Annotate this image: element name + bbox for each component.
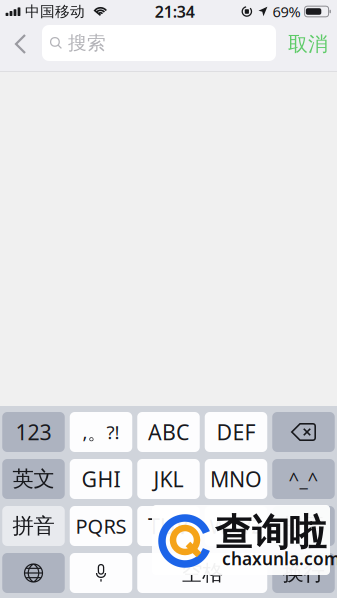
staticText: 取消 bbox=[288, 32, 328, 56]
button[interactable]: GHI bbox=[70, 459, 132, 499]
button[interactable]: Dictation bbox=[70, 553, 132, 593]
button[interactable]: JKL bbox=[137, 459, 200, 499]
staticText: 查询啦 bbox=[215, 510, 326, 556]
staticText: 换行 bbox=[282, 560, 324, 586]
button[interactable]: WXYZ bbox=[205, 506, 267, 546]
button[interactable]: ABC bbox=[137, 412, 200, 452]
staticText: chaxunla.com bbox=[222, 547, 337, 570]
staticText: ABC bbox=[148, 418, 189, 446]
staticText: PQRS bbox=[75, 513, 126, 539]
button[interactable]: ,。?! bbox=[70, 412, 132, 452]
staticText: TUV bbox=[148, 512, 189, 540]
button[interactable]: DEF bbox=[205, 412, 267, 452]
staticText: 拼音 bbox=[12, 513, 54, 539]
staticText: 空格 bbox=[181, 560, 223, 586]
button[interactable]: 123 bbox=[2, 412, 65, 452]
staticText: 搜索 bbox=[282, 513, 324, 539]
staticText: WXYZ bbox=[209, 513, 262, 539]
staticText: ^_^ bbox=[288, 467, 318, 491]
staticText: DEF bbox=[216, 418, 255, 446]
staticText: MNO bbox=[210, 465, 262, 493]
staticText: JKL bbox=[153, 465, 183, 493]
button[interactable]: 拼音 bbox=[2, 506, 65, 546]
button[interactable]: 取消 bbox=[276, 25, 337, 63]
staticText: 中国移动 bbox=[25, 2, 85, 20]
button[interactable]: 英文 bbox=[2, 459, 65, 499]
button[interactable]: ^_^ bbox=[272, 459, 335, 499]
staticText: GHI bbox=[81, 465, 120, 493]
button[interactable]: MNO bbox=[205, 459, 267, 499]
button[interactable]: Back bbox=[0, 25, 42, 63]
button[interactable]: PQRS bbox=[70, 506, 132, 546]
staticText: 123 bbox=[15, 418, 51, 446]
button[interactable]: TUV bbox=[137, 506, 200, 546]
button[interactable]: Delete bbox=[272, 412, 335, 452]
button[interactable]: 搜索 bbox=[272, 506, 335, 546]
button[interactable]: 换行 bbox=[272, 553, 335, 593]
staticText: 21:34 bbox=[155, 1, 195, 22]
staticText: 英文 bbox=[12, 466, 54, 492]
button[interactable]: Switch keyboard bbox=[2, 553, 65, 593]
staticText: ,。?! bbox=[82, 420, 119, 444]
button[interactable]: 空格 bbox=[137, 553, 267, 593]
staticText: 搜索 bbox=[68, 31, 106, 54]
staticText: 69% bbox=[273, 2, 301, 21]
